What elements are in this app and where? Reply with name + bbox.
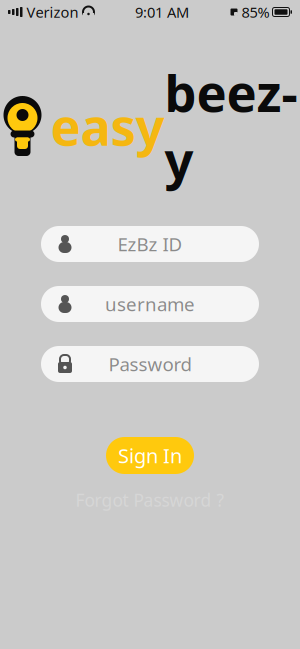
staticText: Forgot Password ? — [75, 488, 224, 511]
staticText: Sign In — [118, 442, 182, 469]
staticText: Verizon — [26, 2, 78, 22]
button[interactable]: EzBz ID — [41, 226, 259, 262]
staticText: username — [105, 292, 195, 316]
staticText: EzBz ID — [117, 232, 182, 256]
button[interactable]: Forgot Password ? — [70, 490, 230, 510]
staticText: easy — [50, 92, 164, 160]
button[interactable]: username — [41, 286, 259, 322]
staticText: Password — [108, 352, 191, 376]
staticText: beezy — [164, 59, 297, 193]
button[interactable]: Password — [41, 346, 259, 382]
button[interactable]: Sign In — [106, 437, 194, 474]
staticText: 9:01 AM — [135, 2, 189, 22]
staticText: 85% — [241, 2, 269, 22]
